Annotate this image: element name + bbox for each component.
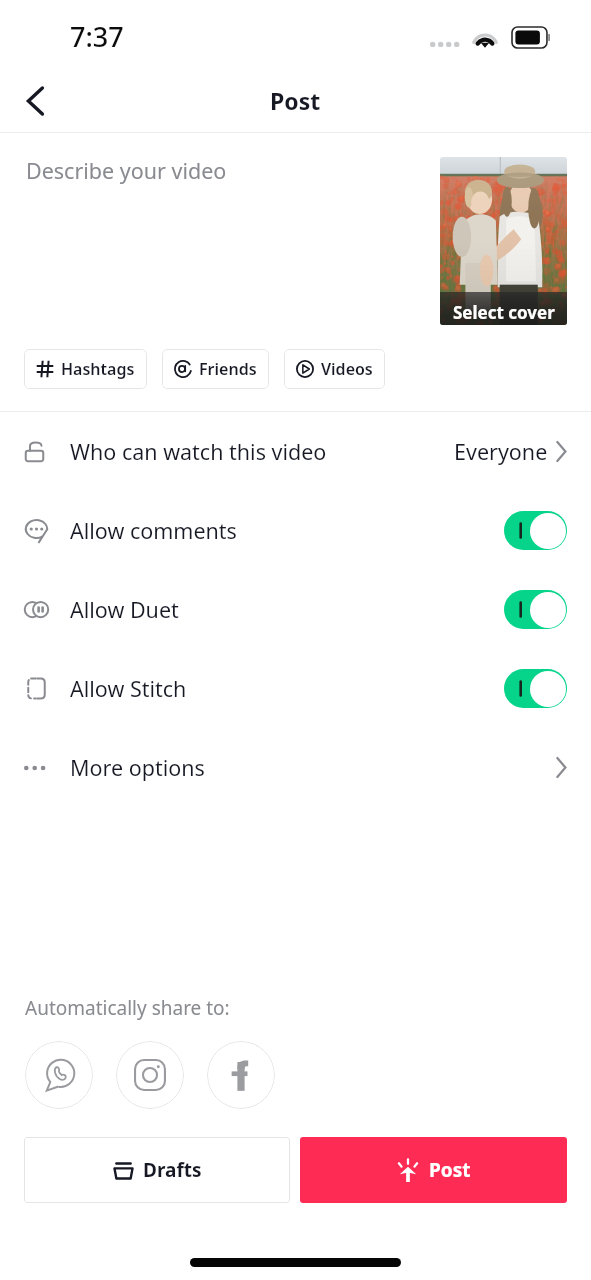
button[interactable]: Allow Stitch: [0, 649, 591, 728]
staticText: Allow Stitch: [70, 674, 187, 703]
button[interactable]: Post: [300, 1137, 567, 1203]
staticText: Post: [270, 85, 321, 116]
button[interactable]: Back: [12, 77, 60, 125]
staticText: Hashtags: [61, 358, 135, 380]
button[interactable]: Instagram: [116, 1041, 184, 1109]
staticText: Automatically share to:: [25, 995, 230, 1021]
staticText: Allow comments: [70, 516, 237, 545]
staticText: Allow Duet: [70, 595, 179, 624]
button[interactable]: Toggle: [504, 590, 567, 629]
button[interactable]: Facebook: [207, 1041, 275, 1109]
staticText: Drafts: [143, 1157, 202, 1183]
staticText: Friends: [199, 358, 257, 380]
button[interactable]: WhatsApp: [25, 1041, 93, 1109]
other: Open: [556, 758, 567, 777]
button[interactable]: Toggle: [504, 669, 567, 708]
other: Open: [556, 442, 567, 461]
button[interactable]: Videos: [284, 349, 385, 389]
button[interactable]: Select cover: [440, 157, 567, 325]
button[interactable]: Drafts: [24, 1137, 290, 1203]
staticText: More options: [70, 753, 205, 782]
button[interactable]: Friends: [162, 349, 269, 389]
staticText: Post: [429, 1157, 471, 1183]
button[interactable]: Who can watch this video: [0, 412, 591, 491]
button[interactable]: Toggle: [504, 511, 567, 550]
button[interactable]: Allow Duet: [0, 570, 591, 649]
staticText: Videos: [321, 358, 373, 380]
button[interactable]: Hashtags: [24, 349, 147, 389]
staticText: Who can watch this video: [70, 437, 327, 466]
staticText: Describe your video: [26, 156, 227, 185]
staticText: Select cover: [453, 301, 555, 324]
button[interactable]: Allow comments: [0, 491, 591, 570]
staticText: Everyone: [454, 437, 548, 466]
staticText: 7:37: [70, 18, 124, 55]
button[interactable]: More options: [0, 728, 591, 807]
